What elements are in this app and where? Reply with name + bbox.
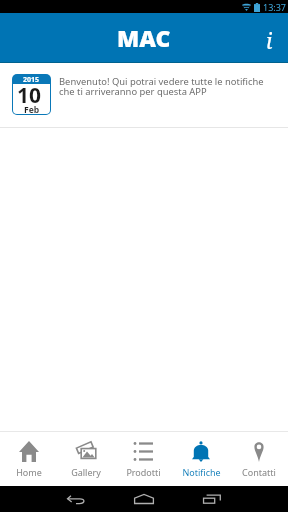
button[interactable]: Gallery bbox=[57, 432, 114, 486]
button[interactable]: 2015 bbox=[0, 63, 288, 127]
button[interactable]: Notifiche bbox=[172, 432, 230, 486]
staticText: 13:37 bbox=[263, 1, 287, 13]
button[interactable]: Home bbox=[124, 486, 164, 512]
staticText: Benvenuto! Qui potrai vedere tutte le no… bbox=[59, 75, 272, 98]
button[interactable]: Info bbox=[252, 13, 288, 63]
button[interactable]: Prodotti bbox=[114, 432, 172, 486]
staticText: 10 bbox=[17, 84, 42, 110]
button[interactable]: Contatti bbox=[230, 432, 288, 486]
staticText: Prodotti bbox=[126, 466, 161, 478]
staticText: Feb bbox=[24, 104, 40, 114]
staticText: 2015 bbox=[23, 75, 40, 84]
button[interactable]: Back bbox=[56, 486, 96, 512]
staticText: Home bbox=[16, 466, 42, 478]
button[interactable]: Home bbox=[0, 432, 57, 486]
staticText: MAC bbox=[117, 22, 171, 53]
staticText: Contatti bbox=[242, 466, 276, 478]
button[interactable]: Recents bbox=[192, 486, 232, 512]
staticText: Notifiche bbox=[182, 466, 221, 478]
staticText: Gallery bbox=[71, 466, 101, 478]
staticText: i bbox=[266, 27, 273, 56]
